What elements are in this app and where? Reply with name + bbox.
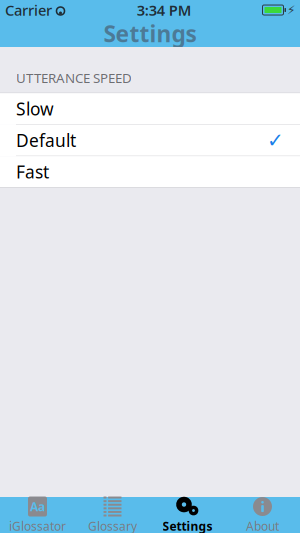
button[interactable]: Aa bbox=[0, 497, 75, 533]
button[interactable]: Default bbox=[0, 125, 300, 156]
staticText: Default bbox=[16, 129, 76, 152]
button[interactable]: Fast bbox=[0, 156, 300, 187]
staticText: Settings bbox=[162, 518, 212, 533]
staticText: About bbox=[246, 518, 279, 533]
staticText: ✓ bbox=[267, 129, 284, 152]
staticText: Aa bbox=[30, 499, 45, 514]
staticText: Settings bbox=[103, 18, 196, 48]
staticText: Slow bbox=[16, 97, 54, 120]
staticText: Glossary bbox=[88, 518, 137, 533]
staticText: iGlossator bbox=[9, 518, 66, 533]
staticText: ⚡︎ bbox=[287, 3, 295, 17]
staticText: 3:34 PM bbox=[137, 0, 192, 20]
staticText: Fast bbox=[16, 160, 49, 183]
button[interactable]: Settings bbox=[150, 497, 225, 533]
staticText: UTTERANCE SPEED bbox=[16, 69, 132, 87]
button[interactable]: Slow bbox=[0, 93, 300, 125]
button[interactable]: About bbox=[225, 497, 300, 533]
staticText: Carrier bbox=[5, 0, 52, 20]
button[interactable]: Glossary bbox=[75, 497, 150, 533]
